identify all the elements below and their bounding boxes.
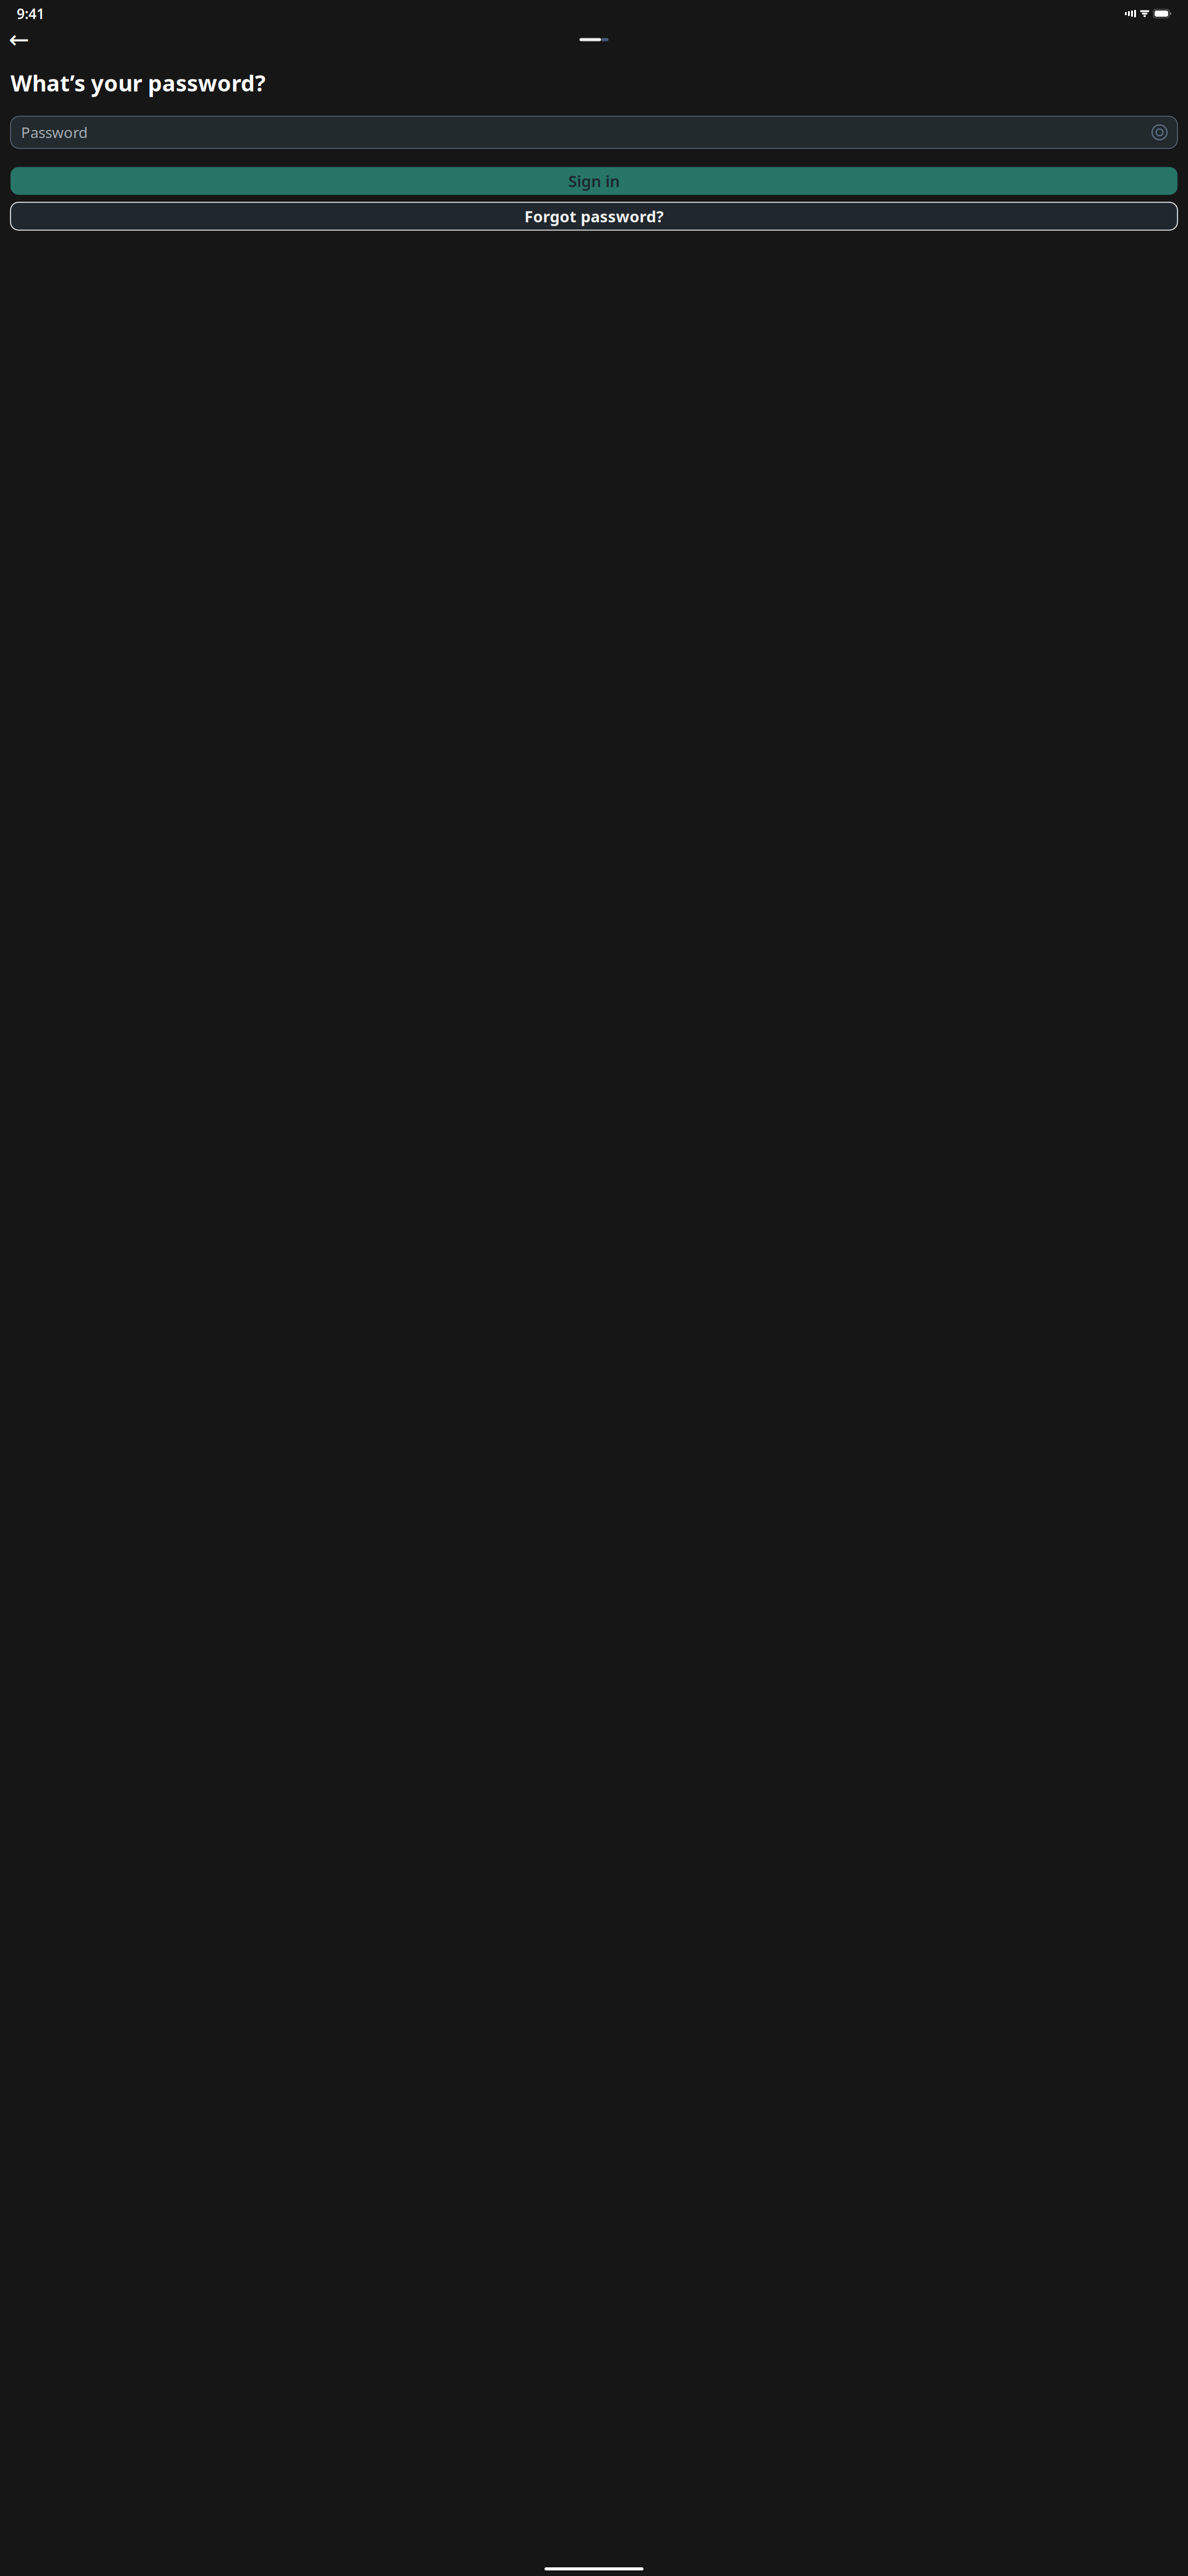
staticText: Sign in [568, 171, 620, 191]
staticText: Password [21, 122, 88, 142]
button[interactable]: Show password [1150, 123, 1169, 142]
staticText: ← [9, 26, 30, 54]
staticText: Forgot password? [524, 206, 664, 227]
button[interactable]: Back [6, 26, 33, 53]
staticText: What’s your password? [11, 68, 265, 98]
button[interactable]: Forgot password? [11, 202, 1177, 230]
staticText: 9:41 [17, 4, 45, 23]
button[interactable]: Sign in [11, 167, 1177, 195]
